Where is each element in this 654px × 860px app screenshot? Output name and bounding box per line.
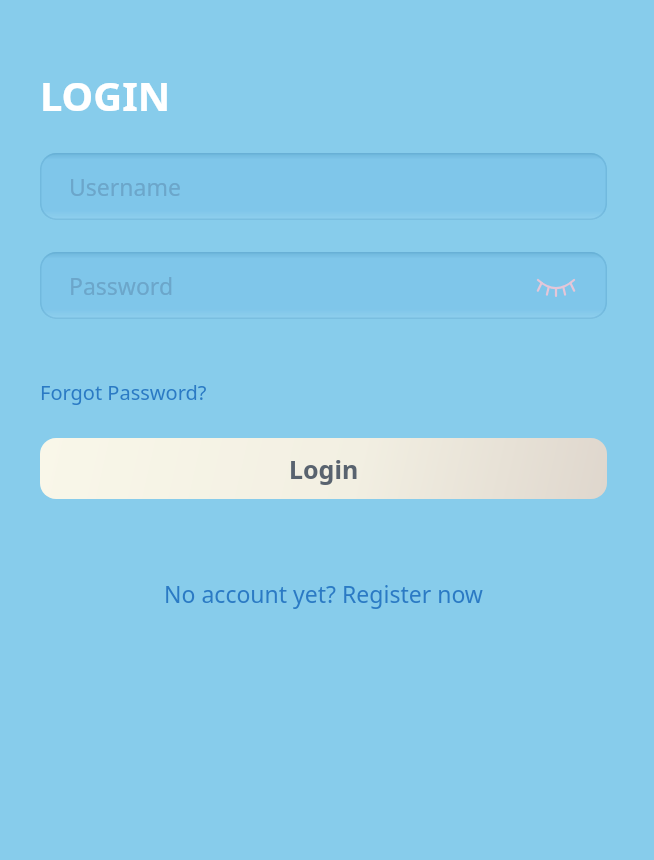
- button[interactable]: Login: [40, 438, 607, 499]
- button[interactable]: Show password: [533, 268, 579, 304]
- staticText: Username: [69, 171, 181, 202]
- staticText: Login: [289, 452, 359, 486]
- button[interactable]: Forgot Password?: [40, 377, 207, 408]
- staticText: Forgot Password?: [40, 379, 207, 406]
- button[interactable]: Username: [40, 153, 607, 220]
- staticText: LOGIN: [40, 68, 171, 122]
- staticText: No account yet? Register now: [164, 578, 483, 609]
- button[interactable]: Password: [40, 252, 607, 319]
- staticText: Password: [69, 270, 174, 301]
- button[interactable]: No account yet? Register now: [40, 574, 607, 613]
